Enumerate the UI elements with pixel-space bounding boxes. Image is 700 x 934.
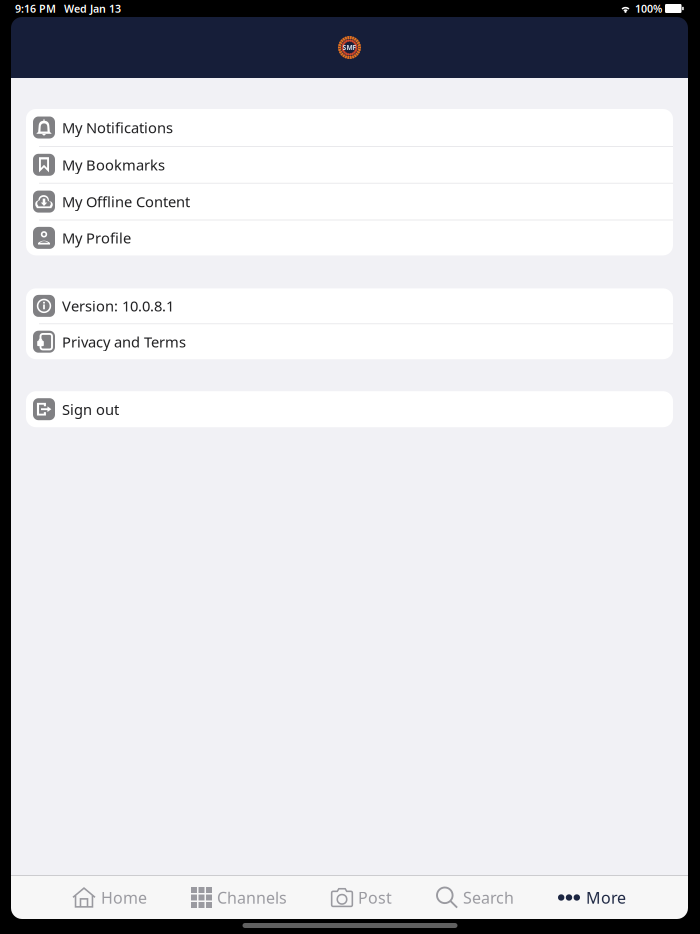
button[interactable]: Post xyxy=(331,876,392,919)
button[interactable]: My Offline Content xyxy=(26,184,673,220)
staticText: Version: 10.0.8.1 xyxy=(62,296,174,316)
staticText: 9:16 PM xyxy=(15,1,56,16)
staticText: SMF xyxy=(342,43,356,52)
staticText: Post xyxy=(358,887,392,908)
staticText: Wed Jan 13 xyxy=(64,1,121,16)
staticText: 100% xyxy=(635,1,662,16)
staticText: Search xyxy=(463,887,514,908)
staticText: Home xyxy=(101,887,147,908)
button[interactable]: My Bookmarks xyxy=(26,147,673,183)
button[interactable]: Privacy and Terms xyxy=(26,324,673,359)
button[interactable]: Channels xyxy=(191,876,287,919)
staticText: My Notifications xyxy=(62,118,173,137)
button[interactable]: My Profile xyxy=(26,220,673,255)
staticText: Privacy and Terms xyxy=(62,332,186,351)
button[interactable]: More xyxy=(558,876,626,919)
button[interactable]: Search xyxy=(436,876,514,919)
button[interactable]: Home xyxy=(73,876,147,919)
staticText: Channels xyxy=(217,887,287,908)
button[interactable]: Sign out xyxy=(26,391,673,427)
staticText: My Offline Content xyxy=(62,192,190,211)
staticText: More xyxy=(586,887,626,908)
staticText: My Profile xyxy=(62,228,131,248)
button[interactable]: My Notifications xyxy=(26,109,673,146)
staticText: Sign out xyxy=(62,399,119,419)
staticText: My Bookmarks xyxy=(62,155,165,175)
button[interactable]: Version: 10.0.8.1 xyxy=(26,288,673,323)
